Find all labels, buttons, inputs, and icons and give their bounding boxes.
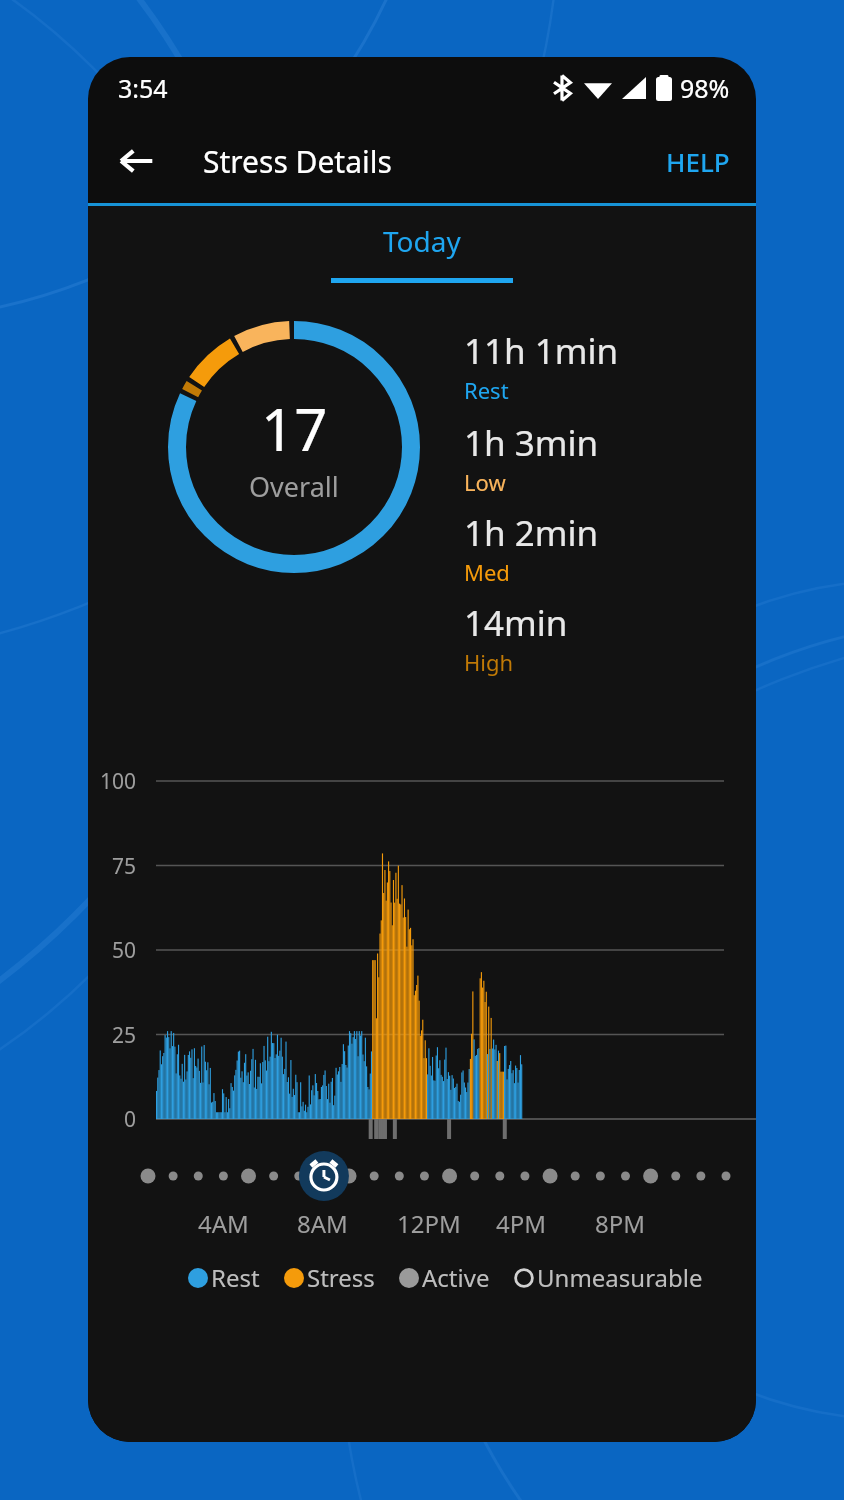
button[interactable]: Stress [284, 1261, 375, 1294]
staticText: Low [464, 467, 506, 497]
button[interactable]: HELP [652, 134, 744, 189]
staticText: 25 [88, 1021, 136, 1050]
staticText: Active [422, 1261, 490, 1294]
staticText: 4AM [198, 1207, 249, 1240]
staticText: Overall [249, 468, 339, 505]
staticText: 98% [680, 71, 730, 105]
staticText: 3:54 [118, 71, 168, 105]
staticText: 0 [88, 1105, 136, 1134]
staticText: 1h 2min [464, 509, 599, 557]
button[interactable]: Rest [188, 1261, 260, 1294]
staticText: Rest [211, 1261, 260, 1294]
staticText: 75 [88, 852, 136, 881]
staticText: Today [383, 222, 461, 260]
staticText: Med [464, 557, 510, 587]
staticText: 14min [464, 599, 568, 647]
staticText: High [464, 647, 514, 677]
staticText: Stress Details [203, 141, 392, 182]
staticText: 50 [88, 936, 136, 965]
staticText: 17 [261, 389, 328, 468]
staticText: Unmeasurable [537, 1261, 703, 1294]
staticText: 1h 3min [464, 419, 599, 467]
button[interactable]: Unmeasurable [514, 1261, 703, 1294]
staticText: 8AM [297, 1207, 348, 1240]
staticText: 4PM [496, 1207, 547, 1240]
button[interactable]: Active [399, 1261, 490, 1294]
staticText: 100 [88, 767, 136, 796]
button[interactable]: Back [106, 131, 166, 191]
staticText: Rest [464, 375, 509, 405]
staticText: 8PM [595, 1207, 646, 1240]
button[interactable]: Today [331, 216, 513, 283]
staticText: HELP [666, 144, 730, 179]
staticText: 11h 1min [464, 327, 619, 375]
staticText: Stress [307, 1261, 375, 1294]
staticText: 12PM [397, 1207, 461, 1240]
